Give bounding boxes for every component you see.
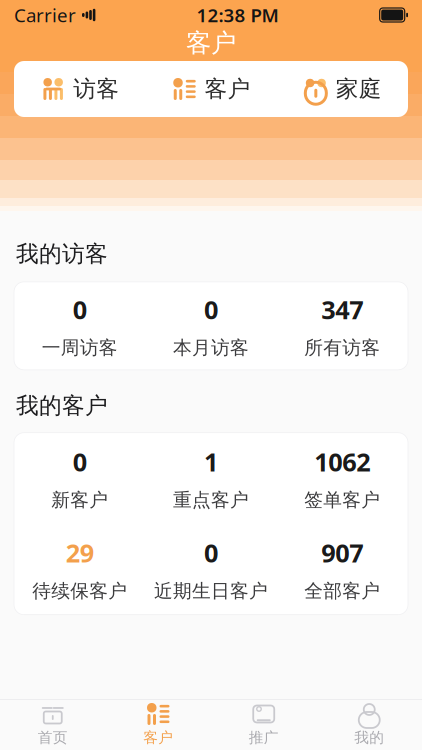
staticText: 0 (204, 536, 218, 569)
staticText: Carrier (14, 3, 76, 27)
button[interactable]: 29 (14, 525, 145, 613)
staticText: 客户 (186, 27, 236, 58)
staticText: 0 (73, 293, 87, 326)
button[interactable]: 访客 (14, 61, 145, 117)
staticText: 推广 (249, 728, 279, 746)
staticText: 首页 (38, 728, 68, 746)
staticText: 家庭 (336, 75, 382, 103)
staticText: 907 (321, 536, 363, 569)
staticText: 签单客户 (304, 488, 380, 511)
staticText: 客户 (143, 728, 173, 746)
staticText: 客户 (204, 75, 250, 103)
staticText: 我的 (354, 728, 384, 746)
staticText: 347 (321, 293, 363, 326)
button[interactable]: 0 (14, 434, 145, 522)
staticText: 重点客户 (173, 488, 249, 511)
button[interactable]: 推广 (211, 700, 316, 750)
button[interactable]: 首页 (0, 700, 105, 750)
staticText: 本月访客 (173, 336, 249, 359)
button[interactable]: 347 (277, 282, 408, 370)
button[interactable]: 0 (145, 525, 277, 613)
button[interactable]: 客户 (145, 61, 277, 117)
staticText: 12:38 PM (197, 3, 279, 27)
button[interactable]: 客户 (105, 700, 211, 750)
staticText: 0 (73, 445, 87, 478)
button[interactable]: 1062 (277, 434, 408, 522)
staticText: 29 (66, 536, 94, 569)
staticText: 全部客户 (304, 579, 380, 602)
staticText: 1062 (314, 445, 370, 478)
staticText: 1 (204, 445, 218, 478)
staticText: 我的访客 (16, 240, 108, 268)
button[interactable]: 1 (145, 434, 277, 522)
button[interactable]: 0 (14, 282, 145, 370)
button[interactable]: 907 (277, 525, 408, 613)
staticText: 一周访客 (42, 336, 118, 359)
button[interactable]: 0 (145, 282, 277, 370)
staticText: 新客户 (51, 488, 108, 511)
staticText: 访客 (73, 75, 119, 103)
button[interactable]: 我的 (316, 700, 422, 750)
staticText: 0 (204, 293, 218, 326)
staticText: 我的客户 (16, 392, 108, 420)
button[interactable]: 家庭 (277, 61, 408, 117)
staticText: 近期生日客户 (154, 579, 268, 602)
staticText: 待续保客户 (32, 579, 127, 602)
staticText: 所有访客 (304, 336, 380, 359)
